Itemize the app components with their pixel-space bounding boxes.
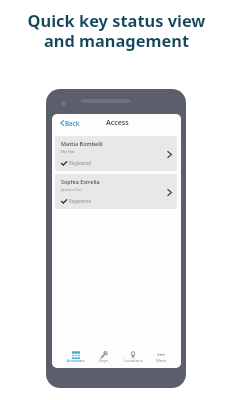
staticText: Registered [69, 198, 92, 204]
staticText: Access [106, 118, 129, 128]
button[interactable]: Keys [91, 350, 117, 366]
staticText: Locations [124, 358, 143, 364]
button[interactable]: Mattia Bombelli [55, 136, 177, 171]
button[interactable]: Sophia Estrella [55, 174, 177, 209]
staticText: My Fiat [61, 149, 75, 154]
button[interactable]: Accesses [63, 350, 89, 366]
other: Open Mattia Bombelli [167, 151, 172, 158]
staticText: Mattia Bombelli [61, 140, 103, 147]
button[interactable]: Back [52, 118, 84, 128]
staticText: Registered [69, 160, 92, 166]
staticText: Accesses [67, 358, 85, 364]
button[interactable]: More [148, 350, 174, 366]
staticText: Back [65, 119, 80, 127]
staticText: Sophia Estrella [61, 178, 100, 185]
staticText: More [156, 358, 167, 364]
staticText: Quick key status view and management [0, 9, 233, 52]
staticText: Jason's Car [61, 187, 82, 192]
other: Open Sophia Estrella [167, 189, 172, 196]
staticText: Keys [99, 358, 109, 364]
button[interactable]: Locations [120, 350, 146, 366]
